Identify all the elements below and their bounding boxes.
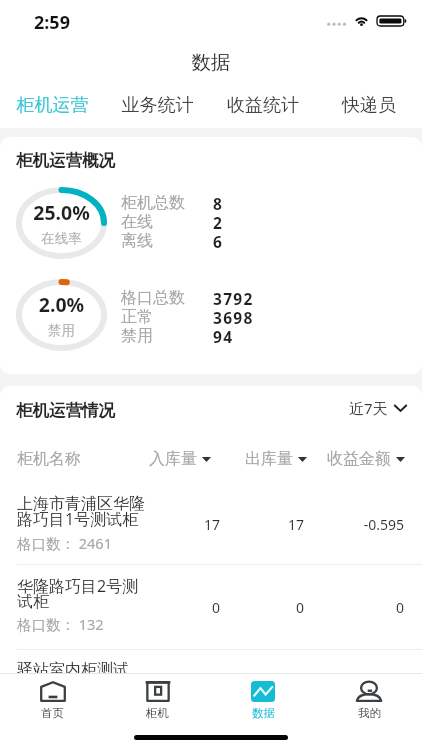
button[interactable]: 数据: [210, 674, 316, 720]
staticText: 3792: [213, 288, 254, 309]
staticText: 在线: [121, 212, 153, 232]
staticText: 0: [150, 683, 220, 702]
staticText: 柜机总数: [121, 193, 185, 213]
staticText: 上海市青浦区华隆路巧目1号测试柜: [17, 494, 153, 530]
staticText: 入库量: [149, 449, 197, 469]
staticText: 2.0%: [16, 291, 107, 318]
staticText: 0: [230, 683, 304, 702]
staticText: 格口数： 100: [17, 699, 104, 719]
staticText: 0: [230, 598, 304, 617]
staticText: 格口总数: [121, 288, 185, 308]
staticText: 柜机名称: [17, 449, 81, 469]
staticText: 在线率: [16, 230, 107, 247]
staticText: 6: [213, 231, 224, 252]
staticText: 离线: [121, 231, 153, 251]
button[interactable]: 业务统计: [105, 80, 210, 128]
staticText: 柜机运营概况: [16, 150, 115, 171]
button[interactable]: 出库量: [245, 449, 307, 469]
staticText: 华隆路巧目2号测试柜: [17, 575, 153, 612]
staticText: 0: [320, 683, 404, 702]
staticText: 25.0%: [16, 199, 107, 226]
staticText: 数据: [252, 706, 275, 720]
staticText: 94: [213, 326, 234, 347]
button[interactable]: 驿站室内柜测试: [0, 650, 422, 735]
staticText: 柜机: [146, 706, 169, 720]
staticText: 收益金额: [327, 449, 391, 469]
staticText: 0: [320, 598, 404, 617]
button[interactable]: 我的: [316, 674, 422, 720]
staticText: 我的: [358, 706, 381, 720]
staticText: 出库量: [245, 449, 293, 469]
button[interactable]: 入库量: [149, 449, 211, 469]
staticText: -0.595: [320, 515, 404, 534]
staticText: 17: [230, 515, 304, 534]
button[interactable]: 近7天: [349, 398, 407, 418]
staticText: 收益统计: [210, 94, 316, 117]
button[interactable]: 收益金额: [327, 449, 405, 469]
staticText: 17: [150, 515, 220, 534]
button[interactable]: 柜机运营: [0, 80, 105, 128]
button[interactable]: 华隆路巧目2号测试柜: [0, 565, 422, 650]
button[interactable]: 收益统计: [210, 80, 316, 128]
staticText: 0: [150, 598, 220, 617]
staticText: 格口数： 132: [17, 614, 104, 634]
staticText: 禁用: [121, 326, 153, 346]
staticText: 2:59: [34, 10, 70, 35]
staticText: 禁用: [16, 322, 107, 339]
staticText: 2: [213, 212, 224, 233]
staticText: 正常: [121, 307, 153, 327]
staticText: 8: [213, 193, 224, 214]
staticText: 首页: [41, 706, 64, 720]
staticText: 数据: [0, 50, 422, 75]
button[interactable]: 柜机: [105, 674, 210, 720]
staticText: 格口数： 2461: [17, 533, 112, 553]
button[interactable]: 首页: [0, 674, 105, 720]
staticText: 驿站室内柜测试: [17, 660, 129, 680]
staticText: 近7天: [349, 398, 388, 418]
button[interactable]: 快递员: [316, 80, 422, 128]
button[interactable]: 上海市青浦区华隆路巧目1号测试柜: [0, 484, 422, 565]
staticText: 3698: [213, 307, 254, 328]
staticText: 快递员: [316, 94, 422, 117]
staticText: 柜机运营: [0, 94, 105, 117]
staticText: 柜机运营情况: [16, 400, 115, 421]
staticText: 业务统计: [105, 94, 210, 117]
